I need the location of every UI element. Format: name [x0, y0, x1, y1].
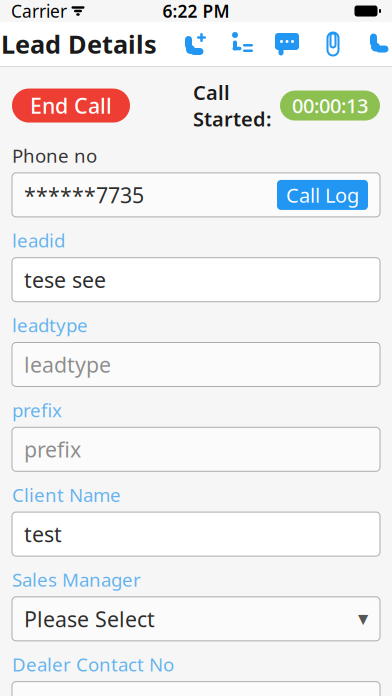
- staticText: 00:00:13: [292, 92, 368, 119]
- button[interactable]: Call Log: [277, 180, 368, 210]
- button[interactable]: Transfer call: [227, 31, 255, 57]
- staticText: prefix: [12, 397, 62, 422]
- staticText: test: [24, 520, 62, 548]
- staticText: Dealer Contact No: [12, 652, 174, 677]
- staticText: leadid: [12, 228, 65, 253]
- staticText: Phone no: [12, 143, 97, 168]
- button[interactable]: Dealer Contact No: [12, 682, 380, 696]
- staticText: Lead Details: [1, 27, 157, 61]
- staticText: 6:22 PM: [162, 0, 229, 22]
- button[interactable]: leadtype: [12, 342, 380, 386]
- button[interactable]: Messages: [273, 31, 301, 57]
- staticText: leadtype: [12, 313, 88, 337]
- staticText: tese see: [24, 265, 106, 294]
- button[interactable]: prefix: [12, 427, 380, 471]
- staticText: ******7735: [24, 181, 144, 209]
- button[interactable]: test: [12, 512, 380, 556]
- staticText: leadtype: [24, 350, 111, 379]
- staticText: prefix: [24, 435, 81, 463]
- button[interactable]: Attachments: [319, 31, 347, 57]
- staticText: Call Started:: [193, 79, 272, 132]
- button[interactable]: End Call: [12, 89, 130, 123]
- button[interactable]: Add call: [181, 31, 209, 57]
- staticText: Please Select: [24, 605, 155, 633]
- staticText: Sales Manager: [12, 567, 141, 592]
- staticText: End Call: [30, 91, 112, 120]
- button[interactable]: Please Select: [12, 597, 380, 641]
- staticText: ▼: [358, 611, 368, 626]
- staticText: Carrier: [11, 0, 67, 22]
- button[interactable]: 00:00:13: [280, 91, 380, 121]
- staticText: Client Name: [12, 482, 121, 507]
- button[interactable]: Call: [365, 31, 391, 57]
- button[interactable]: tese see: [12, 258, 380, 302]
- staticText: Call Log: [286, 182, 359, 208]
